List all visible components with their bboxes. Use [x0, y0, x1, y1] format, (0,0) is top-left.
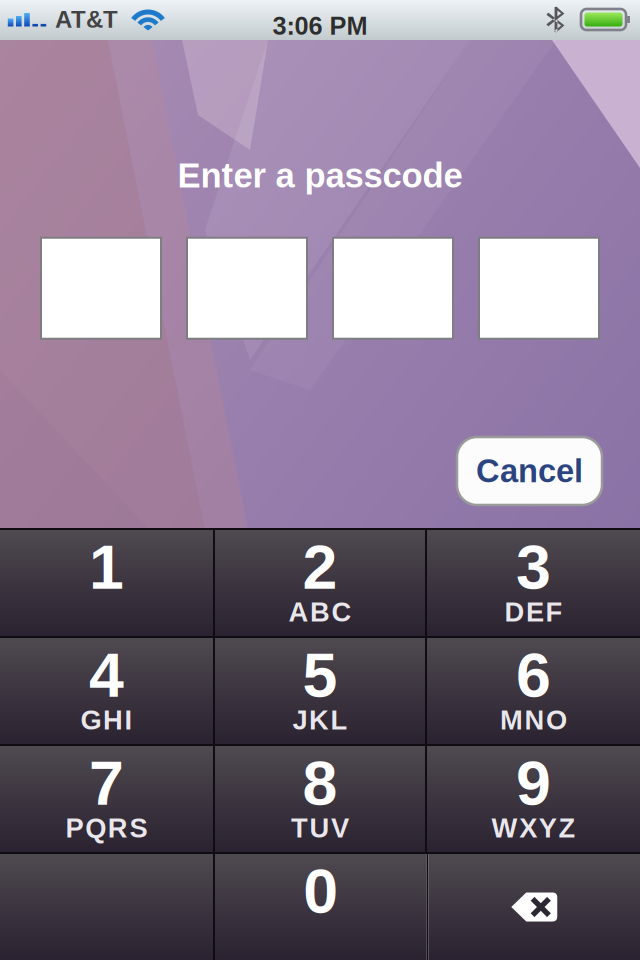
staticText: 8 — [302, 748, 337, 818]
staticText: 0 — [303, 856, 338, 926]
button[interactable]: 0 — [215, 854, 426, 960]
staticText: DEF — [504, 597, 563, 627]
staticText: Cancel — [476, 453, 583, 489]
button[interactable]: 2 — [215, 530, 425, 636]
staticText: WXYZ — [492, 813, 575, 843]
staticText: 4 — [89, 640, 124, 710]
button[interactable]: 1 — [0, 530, 213, 636]
button[interactable]: 4 — [0, 638, 213, 744]
staticText: 3:06 PM — [272, 12, 367, 40]
staticText: Enter a passcode — [177, 156, 462, 195]
staticText: 3 — [516, 532, 551, 602]
staticText: ABC — [288, 597, 352, 627]
button[interactable]: 7 — [0, 746, 213, 852]
staticText: 9 — [516, 748, 551, 818]
staticText: PQRS — [66, 813, 147, 843]
staticText: MNO — [500, 705, 567, 735]
button[interactable]: 3 — [427, 530, 640, 636]
button[interactable]: 8 — [215, 746, 425, 852]
staticText: GHI — [80, 705, 133, 735]
staticText: AT&T — [55, 6, 118, 33]
button[interactable]: 6 — [427, 638, 640, 744]
button[interactable]: Delete — [428, 854, 640, 960]
staticText: JKL — [292, 705, 348, 735]
staticText: 5 — [302, 640, 337, 710]
button[interactable]: Cancel — [457, 437, 602, 505]
staticText: 7 — [89, 748, 124, 818]
button[interactable]: 5 — [215, 638, 425, 744]
button[interactable]: 9 — [427, 746, 640, 852]
staticText: 2 — [302, 532, 337, 602]
staticText: 6 — [516, 640, 551, 710]
staticText: 1 — [89, 532, 124, 602]
staticText: TUV — [291, 813, 349, 843]
